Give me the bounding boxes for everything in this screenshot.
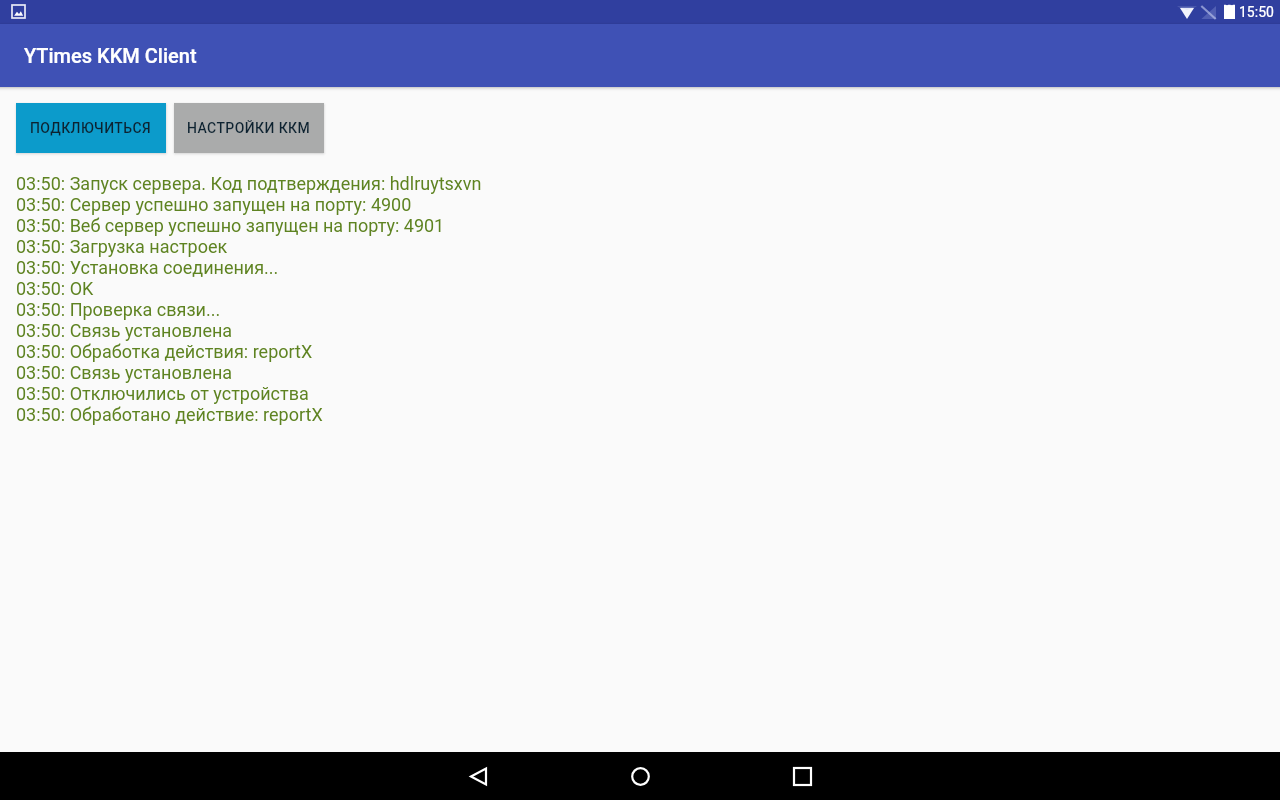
staticText: 03:50: OK (16, 278, 94, 299)
other: Screenshot notification (12, 5, 25, 18)
staticText: 03:50: Веб сервер успешно запущен на пор… (16, 215, 445, 236)
staticText: 03:50: Сервер успешно запущен на порту: … (16, 194, 412, 215)
staticText: 03:50: Связь установлена (16, 320, 233, 341)
staticText: 03:50: Обработка действия: reportX (16, 341, 313, 362)
staticText: 15:50 (1239, 4, 1274, 20)
button[interactable]: ПОДКЛЮЧИТЬСЯ (16, 103, 166, 153)
staticText: 03:50: Запуск сервера. Код подтверждения… (16, 173, 482, 194)
staticText: YTimes KKM Client (24, 44, 197, 67)
staticText: ПОДКЛЮЧИТЬСЯ (30, 120, 152, 136)
staticText: 03:50: Связь установлена (16, 362, 233, 383)
button[interactable]: Back (454, 752, 502, 800)
staticText: 03:50: Установка соединения... (16, 257, 279, 278)
staticText: 03:50: Отключились от устройства (16, 383, 309, 404)
button[interactable]: Recent apps (778, 752, 826, 800)
staticText: 03:50: Обработано действие: reportX (16, 404, 323, 425)
staticText: НАСТРОЙКИ ККМ (187, 120, 311, 136)
staticText: 03:50: Загрузка настроек (16, 236, 228, 257)
button[interactable]: Home (616, 752, 664, 800)
staticText: 03:50: Проверка связи... (16, 299, 221, 320)
button[interactable]: НАСТРОЙКИ ККМ (174, 103, 324, 153)
